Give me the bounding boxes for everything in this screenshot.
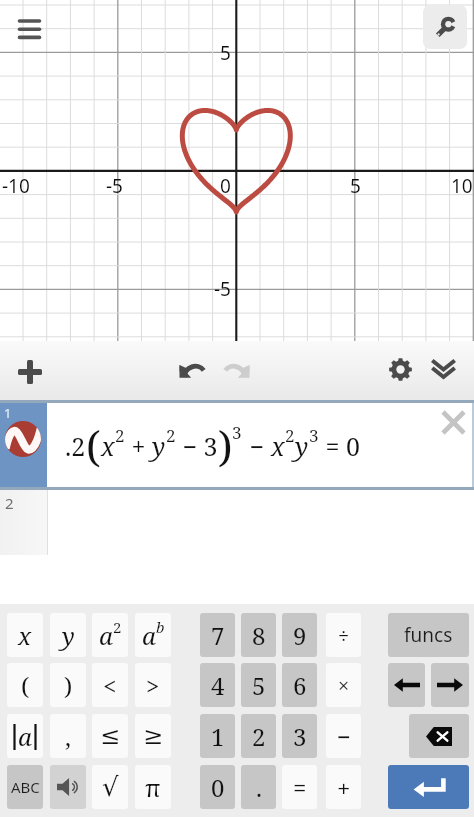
staticText: ,	[65, 720, 71, 753]
staticText: -10	[2, 173, 30, 199]
button[interactable]: 7	[200, 613, 235, 657]
staticText: 7	[211, 619, 225, 652]
button[interactable]: 0	[200, 765, 235, 809]
staticText: 9	[293, 619, 307, 652]
button[interactable]: Enter	[388, 765, 469, 809]
button[interactable]: 9	[282, 613, 317, 657]
staticText: a	[18, 720, 32, 753]
button[interactable]: ,	[50, 714, 86, 758]
button[interactable]: a	[7, 714, 43, 758]
button[interactable]: π	[135, 765, 171, 809]
button[interactable]: ≥	[135, 714, 171, 758]
button[interactable]: 4	[200, 663, 235, 707]
button[interactable]: 3	[282, 714, 317, 758]
button[interactable]: a	[92, 613, 128, 657]
button[interactable]: Expression 2	[0, 490, 47, 555]
staticText: ×	[338, 672, 350, 699]
button[interactable]: Collapse list	[425, 352, 461, 388]
button[interactable]: Add expression	[10, 352, 50, 392]
button[interactable]: Redo	[218, 352, 256, 390]
button[interactable]: ≤	[92, 714, 128, 758]
button[interactable]: Expression 1 visibility	[0, 403, 47, 487]
staticText: +	[125, 429, 152, 463]
button[interactable]: )	[50, 663, 86, 707]
staticText: 5	[252, 669, 266, 702]
staticText: a	[99, 619, 113, 652]
staticText: =	[293, 771, 307, 804]
button[interactable]: funcs	[388, 613, 469, 657]
button[interactable]: y	[50, 613, 86, 657]
button[interactable]: .2	[47, 403, 474, 487]
button[interactable]: ×	[326, 663, 361, 707]
staticText: x	[18, 619, 32, 652]
staticText: >	[146, 669, 160, 702]
staticText: − 3	[176, 429, 218, 463]
button[interactable]: Graph tools	[423, 5, 467, 49]
staticText: a	[142, 619, 156, 652]
staticText: (	[86, 417, 101, 474]
button[interactable]: −	[326, 714, 361, 758]
staticText: )	[64, 669, 73, 702]
staticText: 2	[113, 617, 122, 637]
staticText: 2	[166, 424, 176, 447]
button[interactable]: Delete expression	[437, 406, 470, 439]
staticText: y	[295, 429, 309, 463]
staticText: y	[62, 619, 75, 652]
staticText: y	[152, 429, 166, 463]
staticText: 2	[5, 493, 14, 513]
button[interactable]: ABC	[7, 765, 43, 809]
staticText: 2	[115, 424, 125, 447]
staticText: ABC	[11, 777, 40, 797]
button[interactable]: 1	[200, 714, 235, 758]
staticText: 10	[451, 173, 473, 199]
button[interactable]: +	[326, 765, 361, 809]
staticText: 0	[220, 173, 231, 199]
staticText: -5	[214, 276, 231, 302]
staticText: −	[243, 429, 271, 463]
staticText: −	[337, 720, 351, 753]
button[interactable]: <	[92, 663, 128, 707]
staticText: π	[145, 771, 161, 804]
staticText: 8	[252, 619, 266, 652]
staticText: = 0	[319, 429, 360, 463]
staticText: b	[156, 617, 165, 637]
staticText: )	[218, 417, 233, 474]
staticText: 0	[211, 771, 225, 804]
staticText: ÷	[338, 622, 350, 649]
button[interactable]: 6	[282, 663, 317, 707]
staticText: funcs	[404, 622, 453, 648]
button[interactable]: Undo	[173, 352, 211, 390]
button[interactable]: Sound	[50, 765, 86, 809]
staticText: 2	[252, 720, 266, 753]
staticText: 1	[211, 720, 225, 753]
button[interactable]: x	[7, 613, 43, 657]
button[interactable]: .	[241, 765, 276, 809]
button[interactable]: 8	[241, 613, 276, 657]
staticText: 2	[285, 424, 295, 447]
button[interactable]: (	[7, 663, 43, 707]
staticText: 1	[4, 404, 12, 422]
staticText: 3	[309, 424, 319, 447]
staticText: 5	[220, 40, 231, 66]
button[interactable]: 2	[241, 714, 276, 758]
button[interactable]: ÷	[326, 613, 361, 657]
button[interactable]: Right	[431, 663, 469, 707]
button[interactable]: Menu	[8, 9, 51, 49]
staticText: ≥	[143, 722, 164, 750]
staticText: 4	[211, 669, 225, 702]
button[interactable]: a	[135, 613, 171, 657]
button[interactable]: Expression settings	[382, 352, 418, 388]
button[interactable]: 5	[241, 663, 276, 707]
staticText: x	[271, 429, 285, 463]
staticText: +	[337, 771, 351, 804]
staticText: ≤	[100, 722, 121, 750]
button[interactable]: >	[135, 663, 171, 707]
button[interactable]: Left	[388, 663, 425, 707]
button[interactable]: Backspace	[409, 714, 469, 758]
button[interactable]: √	[92, 765, 128, 809]
staticText: <	[103, 669, 117, 702]
staticText: (	[21, 669, 30, 702]
staticText: x	[101, 429, 115, 463]
button[interactable]: =	[282, 765, 317, 809]
